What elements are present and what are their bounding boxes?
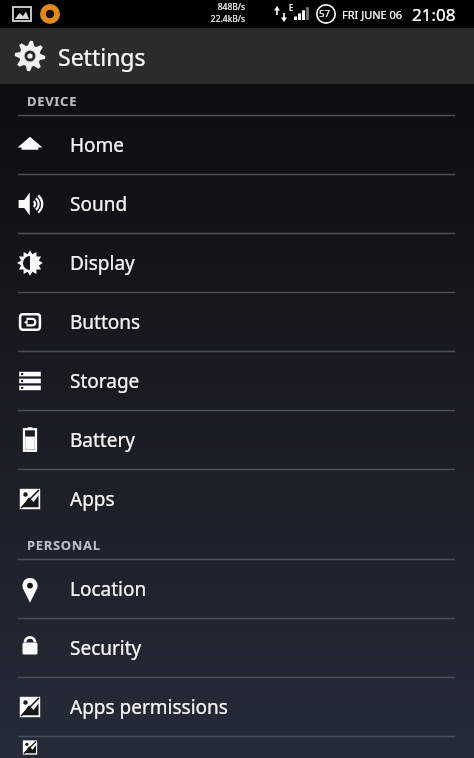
button[interactable]: Settings [0, 28, 474, 84]
staticText: Display [70, 250, 135, 276]
button[interactable]: Buttons [0, 293, 474, 351]
staticText: 21:08 [412, 3, 456, 26]
button[interactable]: Security [0, 619, 474, 677]
button[interactable] [0, 737, 474, 758]
staticText: E [289, 2, 294, 13]
staticText: Apps permissions [70, 694, 228, 720]
staticText: 57 [319, 7, 330, 20]
staticText: Storage [70, 368, 140, 394]
button[interactable]: Storage [0, 352, 474, 410]
button[interactable]: Battery [0, 411, 474, 469]
staticText: FRI JUNE 06 [342, 7, 403, 22]
other: Settings [13, 39, 47, 73]
staticText: PERSONAL [27, 536, 101, 554]
staticText: DEVICE [27, 92, 78, 110]
staticText: 22.4kB/s [210, 13, 245, 25]
staticText: Apps [70, 486, 115, 512]
staticText: Sound [70, 191, 128, 217]
staticText: 848B/s [217, 1, 245, 13]
button[interactable]: Sound [0, 175, 474, 233]
staticText: Settings [58, 41, 146, 72]
staticText: Home [70, 132, 125, 158]
button[interactable]: Location [0, 560, 474, 618]
staticText: Battery [70, 427, 135, 453]
button[interactable]: Apps [0, 470, 474, 528]
staticText: Buttons [70, 309, 141, 335]
staticText: Location [70, 576, 147, 602]
staticText: Security [70, 635, 142, 661]
button[interactable]: Home [0, 116, 474, 174]
button[interactable]: Apps permissions [0, 678, 474, 736]
button[interactable]: Display [0, 234, 474, 292]
